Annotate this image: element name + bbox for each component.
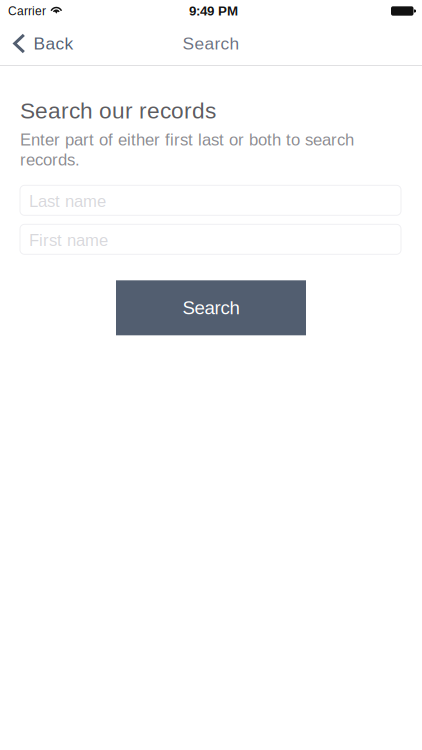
button[interactable]: Back bbox=[0, 26, 85, 61]
staticText: Search our records bbox=[20, 98, 216, 123]
button[interactable]: Last name bbox=[20, 185, 401, 215]
staticText: Last name bbox=[29, 192, 106, 211]
button[interactable]: First name bbox=[20, 224, 401, 254]
staticText: Back bbox=[33, 34, 73, 53]
staticText: Search bbox=[182, 297, 239, 318]
staticText: Search bbox=[182, 34, 239, 53]
staticText: 9:49 PM bbox=[189, 4, 238, 18]
staticText: records. bbox=[20, 150, 80, 169]
staticText: Carrier bbox=[8, 4, 46, 18]
staticText: First name bbox=[29, 231, 108, 250]
staticText: Enter part of either first last or both … bbox=[20, 130, 354, 149]
button[interactable]: Search bbox=[116, 280, 306, 335]
